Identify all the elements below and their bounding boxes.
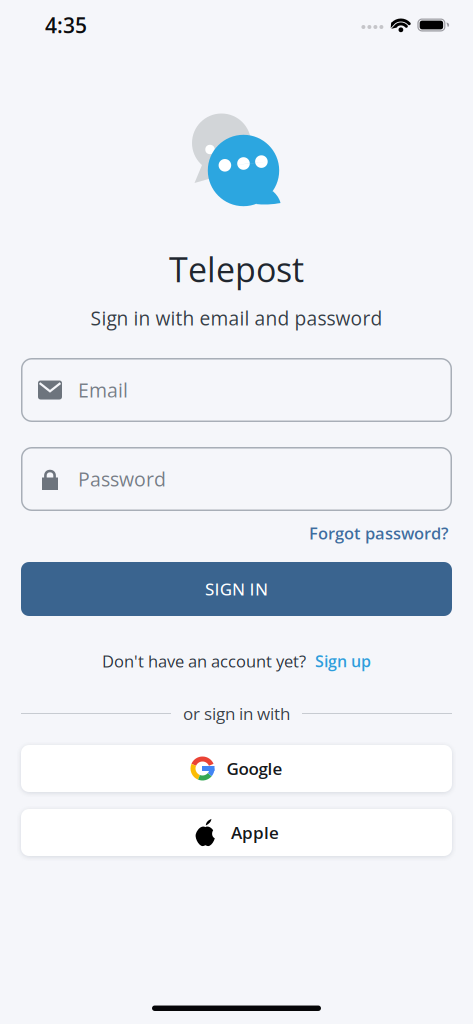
staticText: Sign up (315, 650, 371, 672)
staticText: Google (226, 757, 282, 780)
staticText: Apple (231, 821, 279, 844)
button[interactable]: Password (21, 447, 452, 511)
button[interactable]: Sign up (315, 650, 371, 672)
staticText: Don't have an account yet? (102, 650, 306, 672)
staticText: Sign in with email and password (90, 305, 382, 331)
button[interactable]: SIGN IN (21, 562, 452, 616)
staticText: or sign in with (183, 702, 290, 725)
button[interactable]: Apple (21, 809, 452, 856)
staticText: Password (78, 466, 166, 492)
staticText: Email (78, 377, 128, 403)
button[interactable]: Google (21, 745, 452, 792)
staticText: Forgot password? (309, 522, 449, 544)
staticText: SIGN IN (205, 577, 268, 601)
button[interactable]: Email (21, 358, 452, 422)
staticText: 4:35 (45, 11, 87, 39)
button[interactable]: Forgot password? (309, 522, 449, 544)
staticText: Telepost (169, 246, 304, 292)
